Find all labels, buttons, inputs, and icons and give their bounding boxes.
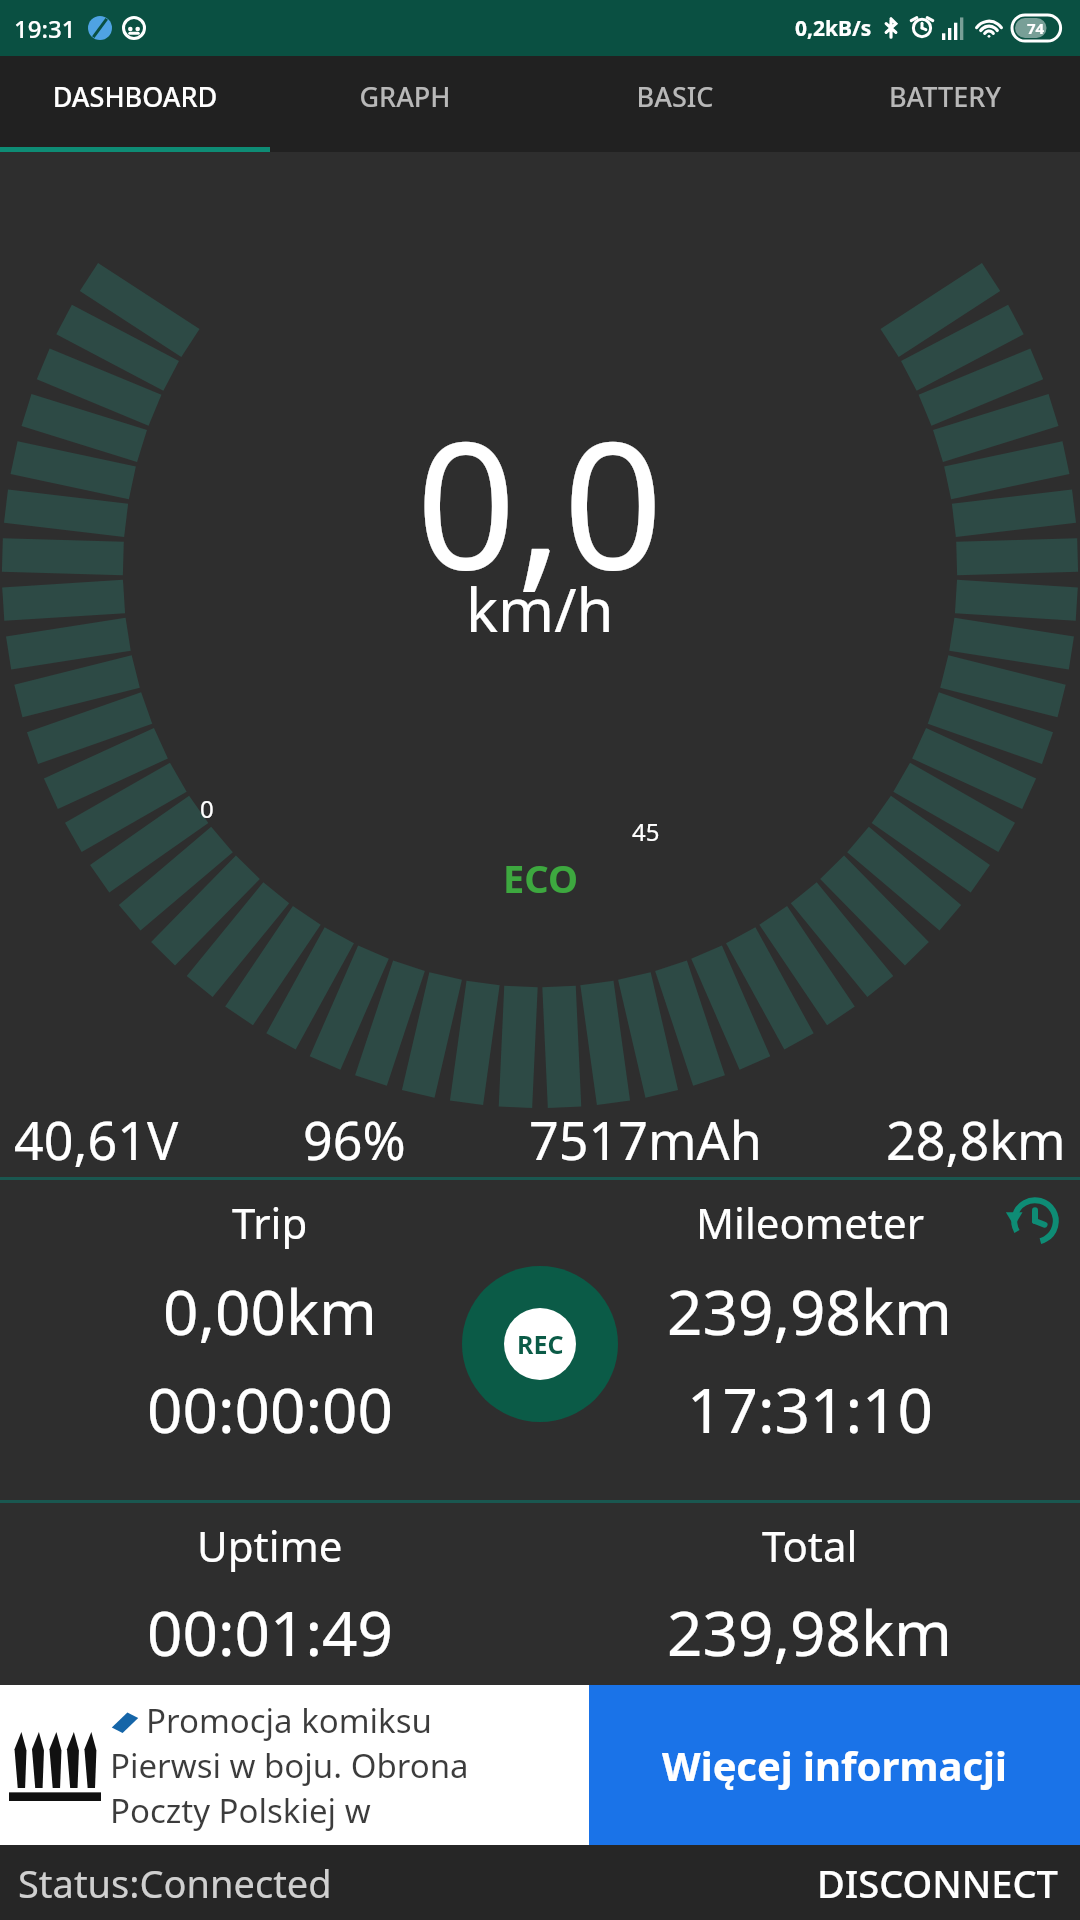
staticText: Trip	[232, 1194, 308, 1251]
button[interactable]: Record	[462, 1266, 618, 1422]
staticText: Poczty Polskiej w	[110, 1788, 371, 1833]
staticText: 7517mAh	[529, 1104, 762, 1175]
staticText: GRAPH	[276, 78, 534, 115]
staticText: 28,8km	[886, 1104, 1066, 1175]
staticText: 74	[1027, 18, 1045, 38]
staticText: 17:31:10	[687, 1367, 934, 1451]
staticText: BATTERY	[816, 78, 1074, 115]
staticText: 0,00km	[163, 1269, 378, 1353]
staticText: DASHBOARD	[6, 78, 264, 115]
button[interactable]: Uptime	[0, 1503, 540, 1674]
staticText: 96%	[303, 1104, 406, 1175]
staticText: 00:00:00	[147, 1367, 394, 1451]
button[interactable]: DISCONNECT	[795, 1847, 1080, 1919]
staticText: BASIC	[546, 78, 804, 115]
staticText: 40,61V	[14, 1104, 179, 1175]
button[interactable]: Promocja komiksu	[0, 1685, 589, 1845]
staticText: km/h	[466, 568, 614, 650]
staticText: 0,0	[416, 382, 664, 620]
button[interactable]: Więcej informacji	[589, 1685, 1080, 1845]
staticText: 239,98km	[667, 1590, 953, 1674]
button[interactable]: Trip	[0, 1180, 540, 1500]
button[interactable]: Mileometer	[540, 1180, 1080, 1500]
button[interactable]: GRAPH	[270, 56, 540, 152]
button[interactable]: DASHBOARD	[0, 56, 270, 152]
button[interactable]: Reset history	[1002, 1188, 1068, 1254]
staticText: ECO	[503, 852, 578, 904]
staticText: Promocja komiksu	[146, 1698, 432, 1743]
staticText: Status:Connected	[18, 1857, 332, 1909]
staticText: 00:01:49	[147, 1590, 394, 1674]
staticText: REC	[517, 1327, 564, 1361]
staticText: 0,2kB/s	[795, 14, 872, 43]
staticText: Total	[762, 1517, 858, 1574]
staticText: Więcej informacji	[662, 1738, 1007, 1792]
staticText: Mileometer	[696, 1194, 925, 1251]
staticText: Pierwsi w boju. Obrona	[110, 1743, 469, 1788]
staticText: 19:31	[14, 12, 76, 45]
staticText: Uptime	[197, 1517, 343, 1574]
button[interactable]: Total	[540, 1503, 1080, 1674]
staticText: 239,98km	[667, 1269, 953, 1353]
staticText: DISCONNECT	[817, 1857, 1058, 1909]
staticText: 45	[632, 815, 660, 848]
staticText: 0	[200, 792, 214, 825]
button[interactable]: BATTERY	[810, 56, 1080, 152]
button[interactable]: BASIC	[540, 56, 810, 152]
